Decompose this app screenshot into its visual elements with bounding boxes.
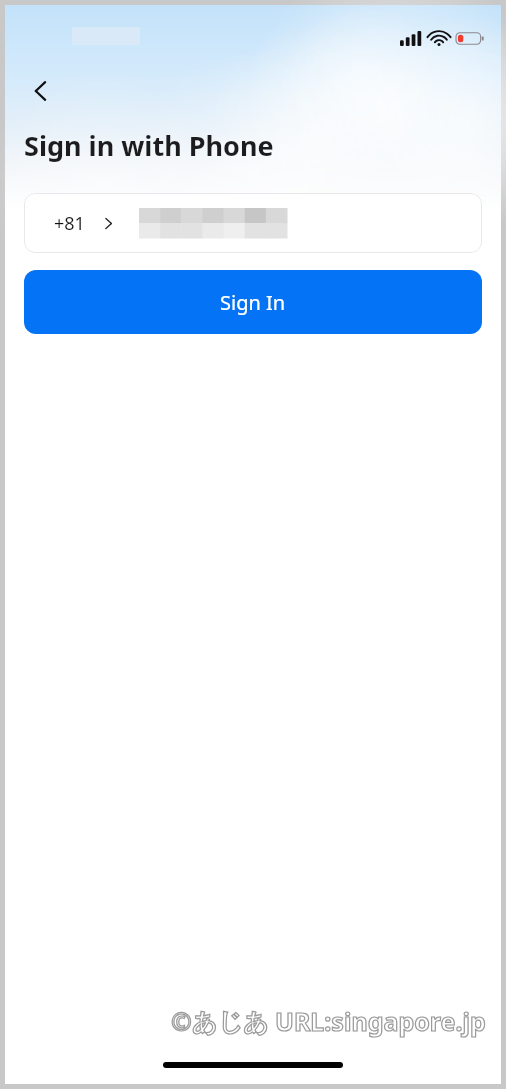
staticText: ©あじあ URL:singapore.jp (171, 1004, 486, 1038)
button[interactable]: Back (17, 67, 65, 115)
button[interactable]: Sign In (24, 270, 482, 334)
staticText: Sign in with Phone (24, 127, 274, 164)
staticText: +81 (54, 211, 85, 236)
button[interactable]: +81 (24, 193, 482, 253)
staticText: Sign In (220, 289, 286, 316)
